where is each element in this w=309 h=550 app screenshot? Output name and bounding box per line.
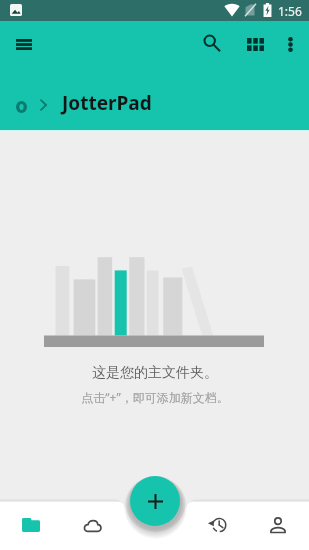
- button[interactable]: Account: [266, 513, 290, 537]
- button[interactable]: Cloud: [80, 513, 104, 537]
- button[interactable]: Home: [5, 91, 37, 123]
- staticText: 这是您的主文件夹。: [92, 364, 218, 382]
- button[interactable]: Recent: [206, 513, 230, 537]
- staticText: 点击“+”，即可添加新文档。: [81, 389, 229, 405]
- staticText: 1:56: [278, 3, 302, 19]
- staticText: JotterPad: [62, 90, 152, 116]
- button[interactable]: Menu: [4, 24, 44, 64]
- button[interactable]: Add document: [130, 476, 180, 526]
- button[interactable]: More options: [270, 24, 309, 64]
- button[interactable]: Grid view: [235, 24, 275, 64]
- button[interactable]: Search: [191, 24, 231, 64]
- button[interactable]: Files: [19, 513, 43, 537]
